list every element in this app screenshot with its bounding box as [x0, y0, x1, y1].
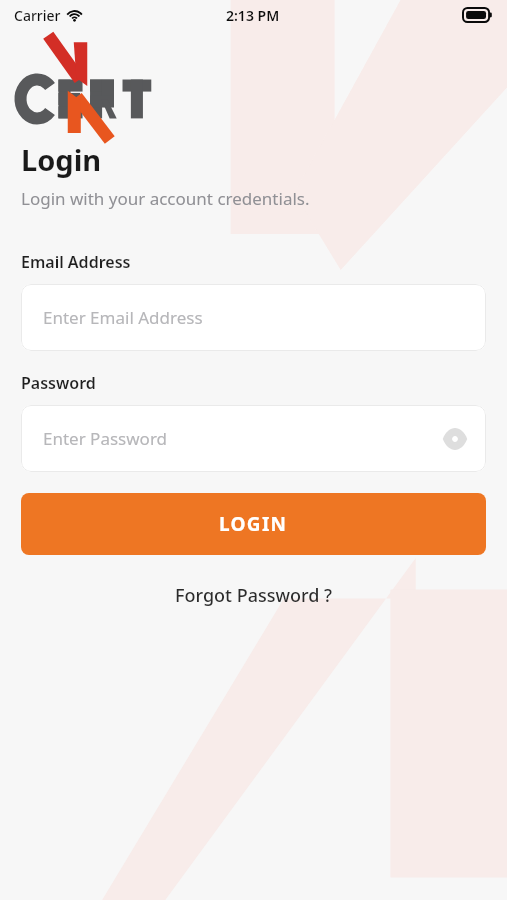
- staticText: 2:13 PM: [226, 6, 280, 25]
- button[interactable]: Show password: [438, 422, 472, 456]
- staticText: LOGIN: [219, 511, 288, 537]
- staticText: Enter Password: [43, 427, 168, 450]
- staticText: Password: [21, 372, 96, 394]
- button[interactable]: Forgot Password ?: [165, 577, 343, 614]
- button[interactable]: Enter Email Address: [21, 284, 486, 351]
- staticText: Forgot Password ?: [175, 583, 333, 608]
- staticText: Login: [21, 140, 102, 179]
- button[interactable]: Enter Password: [21, 405, 486, 472]
- staticText: Login with your account credentials.: [21, 187, 310, 210]
- staticText: Carrier: [14, 6, 61, 25]
- staticText: Email Address: [21, 251, 131, 273]
- button[interactable]: LOGIN: [21, 493, 486, 555]
- staticText: Enter Email Address: [43, 306, 203, 329]
